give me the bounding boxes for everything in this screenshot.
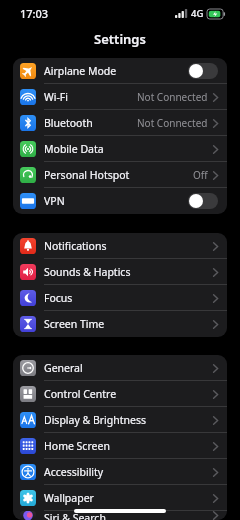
- button[interactable]: Screen Time: [13, 311, 227, 337]
- staticText: Off: [193, 168, 208, 182]
- staticText: Mobile Data: [44, 142, 213, 156]
- button[interactable]: Notifications: [13, 233, 227, 259]
- button[interactable]: Personal Hotspot: [13, 162, 227, 188]
- button[interactable]: VPN: [13, 188, 227, 214]
- button[interactable]: Wallpaper: [13, 485, 227, 511]
- staticText: Notifications: [44, 239, 213, 253]
- staticText: Accessibility: [44, 465, 213, 479]
- other: Airplane Mode toggle: [188, 63, 218, 79]
- staticText: VPN: [44, 194, 188, 208]
- button[interactable]: Accessibility: [13, 459, 227, 485]
- staticText: Bluetooth: [44, 116, 137, 130]
- other: VPN toggle: [188, 193, 218, 209]
- staticText: Wallpaper: [44, 491, 213, 505]
- staticText: Not Connected: [137, 90, 208, 104]
- button[interactable]: Control Centre: [13, 381, 227, 407]
- button[interactable]: Siri & Search: [13, 511, 227, 520]
- staticText: Personal Hotspot: [44, 168, 193, 182]
- staticText: Not Connected: [137, 116, 208, 130]
- staticText: 4G: [191, 7, 204, 20]
- staticText: Screen Time: [44, 317, 213, 331]
- staticText: Airplane Mode: [44, 64, 188, 78]
- button[interactable]: Sounds & Haptics: [13, 259, 227, 285]
- button[interactable]: General: [13, 355, 227, 381]
- staticText: Focus: [44, 291, 213, 305]
- button[interactable]: Display & Brightness: [13, 407, 227, 433]
- staticText: Home Screen: [44, 439, 213, 453]
- staticText: Settings: [94, 30, 146, 48]
- staticText: Sounds & Haptics: [44, 265, 213, 279]
- button[interactable]: Wi-Fi: [13, 84, 227, 110]
- staticText: Wi-Fi: [44, 90, 137, 104]
- staticText: 17:03: [20, 6, 49, 21]
- button[interactable]: Focus: [13, 285, 227, 311]
- button[interactable]: Mobile Data: [13, 136, 227, 162]
- button[interactable]: Bluetooth: [13, 110, 227, 136]
- button[interactable]: Home Screen: [13, 433, 227, 459]
- staticText: General: [44, 361, 213, 375]
- staticText: Display & Brightness: [44, 413, 213, 427]
- staticText: Control Centre: [44, 387, 213, 401]
- staticText: Siri & Search: [44, 511, 213, 520]
- button[interactable]: Airplane Mode: [13, 58, 227, 84]
